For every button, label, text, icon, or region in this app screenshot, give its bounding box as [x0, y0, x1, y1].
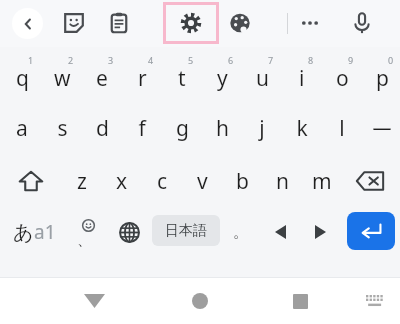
staticText: x — [116, 167, 128, 196]
staticText: 7 — [268, 54, 274, 66]
button[interactable]: j — [242, 103, 282, 153]
button[interactable]: — — [362, 103, 400, 153]
button[interactable]: 2 — [42, 49, 82, 101]
button[interactable]: Move cursor left — [260, 207, 300, 257]
button[interactable]: z — [62, 157, 102, 205]
staticText: y — [217, 64, 228, 93]
staticText: o — [336, 64, 349, 93]
staticText: 。 — [233, 223, 248, 242]
button[interactable]: Settings — [163, 2, 219, 44]
button[interactable]: Back — [12, 8, 43, 39]
staticText: e — [96, 64, 108, 93]
button[interactable]: Home — [183, 284, 217, 318]
staticText: a1 — [34, 219, 56, 245]
staticText: g — [176, 114, 189, 143]
staticText: あ — [13, 220, 34, 245]
staticText: j — [259, 114, 265, 143]
button[interactable]: Clipboard — [102, 6, 136, 40]
staticText: p — [376, 64, 389, 93]
staticText: n — [276, 167, 289, 196]
staticText: 8 — [308, 54, 314, 66]
staticText: 4 — [148, 54, 154, 66]
button[interactable]: Enter — [347, 212, 395, 250]
staticText: c — [157, 167, 168, 196]
staticText: a — [16, 114, 28, 143]
staticText: b — [236, 167, 249, 196]
staticText: 3 — [108, 54, 114, 66]
button[interactable]: f — [122, 103, 162, 153]
button[interactable]: 9 — [322, 49, 362, 101]
button[interactable]: Emoji and comma — [66, 207, 108, 257]
staticText: u — [256, 64, 269, 93]
button[interactable]: 3 — [82, 49, 122, 101]
staticText: k — [296, 114, 308, 143]
button[interactable]: a — [2, 103, 42, 153]
button[interactable]: 8 — [282, 49, 322, 101]
button[interactable]: 6 — [202, 49, 242, 101]
button[interactable]: Stickers — [57, 6, 91, 40]
staticText: r — [138, 64, 147, 93]
button[interactable]: Themes — [223, 6, 257, 40]
button[interactable]: Recent apps — [283, 284, 317, 318]
button[interactable]: 。 — [222, 207, 258, 257]
button[interactable]: h — [202, 103, 242, 153]
staticText: i — [299, 64, 305, 93]
button[interactable]: s — [42, 103, 82, 153]
button[interactable]: g — [162, 103, 202, 153]
staticText: 1 — [28, 54, 34, 66]
staticText: w — [54, 64, 71, 93]
button[interactable]: 7 — [242, 49, 282, 101]
staticText: d — [96, 114, 109, 143]
staticText: 5 — [188, 54, 194, 66]
staticText: 日本語 — [165, 222, 207, 240]
staticText: m — [312, 167, 332, 196]
button[interactable]: Switch keyboard — [360, 286, 390, 316]
button[interactable]: 4 — [122, 49, 162, 101]
staticText: v — [197, 167, 208, 196]
staticText: h — [216, 114, 229, 143]
staticText: — — [372, 115, 392, 141]
button[interactable]: More options — [293, 6, 327, 40]
button[interactable]: v — [182, 157, 222, 205]
button[interactable]: 1 — [2, 49, 42, 101]
staticText: l — [339, 114, 345, 143]
button[interactable]: あ — [4, 207, 64, 257]
button[interactable]: l — [322, 103, 362, 153]
button[interactable]: d — [82, 103, 122, 153]
button[interactable]: Hide keyboard — [77, 284, 111, 318]
staticText: f — [138, 114, 146, 143]
button[interactable]: m — [302, 157, 342, 205]
staticText: 6 — [228, 54, 234, 66]
staticText: s — [57, 114, 68, 143]
staticText: 0 — [388, 54, 394, 66]
button[interactable]: 5 — [162, 49, 202, 101]
button[interactable]: x — [102, 157, 142, 205]
staticText: 9 — [348, 54, 354, 66]
button[interactable]: k — [282, 103, 322, 153]
button[interactable]: Move cursor right — [300, 207, 340, 257]
button[interactable]: Change keyboard language — [108, 207, 150, 257]
button[interactable]: Shift — [6, 157, 56, 205]
button[interactable]: Backspace — [345, 157, 395, 205]
button[interactable]: n — [262, 157, 302, 205]
staticText: t — [178, 64, 186, 93]
staticText: q — [16, 64, 29, 93]
button[interactable]: Voice input — [345, 6, 379, 40]
button[interactable]: c — [142, 157, 182, 205]
staticText: 、 — [77, 231, 92, 250]
button[interactable]: b — [222, 157, 262, 205]
staticText: 2 — [68, 54, 74, 66]
button[interactable]: 0 — [362, 49, 400, 101]
staticText: z — [77, 167, 87, 196]
button[interactable]: 日本語 — [152, 215, 220, 246]
